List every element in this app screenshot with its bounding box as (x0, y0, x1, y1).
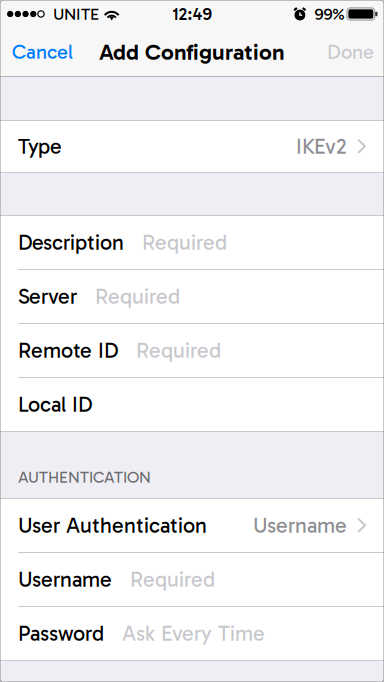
button[interactable]: Done (317, 28, 384, 76)
staticText: Password (18, 621, 104, 646)
staticText: Local ID (18, 392, 92, 417)
button[interactable]: Cancel (0, 28, 83, 76)
staticText: 12:49 (172, 4, 211, 24)
button[interactable]: Local ID (0, 378, 384, 431)
staticText: Required (142, 230, 227, 255)
button[interactable]: Password (0, 607, 384, 660)
staticText: Server (18, 284, 77, 309)
staticText: Username (253, 513, 347, 538)
staticText: Done (327, 40, 374, 64)
staticText: Ask Every Time (122, 621, 265, 646)
button[interactable]: Username (0, 553, 384, 606)
staticText: Add Configuration (99, 38, 285, 66)
staticText: Required (95, 284, 180, 309)
button[interactable]: Server (0, 270, 384, 323)
staticText: Remote ID (18, 338, 118, 363)
staticText: Description (18, 230, 124, 255)
staticText: 99% (314, 4, 344, 24)
staticText: Required (130, 567, 215, 592)
staticText: Type (18, 134, 62, 159)
staticText: Cancel (12, 40, 73, 64)
button[interactable]: Description (0, 216, 384, 269)
staticText: User Authentication (18, 513, 207, 538)
button[interactable]: Type (0, 121, 384, 172)
button[interactable]: User Authentication (0, 499, 384, 552)
staticText: Username (18, 567, 112, 592)
button[interactable]: Remote ID (0, 324, 384, 377)
staticText: Required (136, 338, 221, 363)
staticText: AUTHENTICATION (18, 468, 151, 487)
staticText: UNITE (53, 4, 99, 24)
staticText: IKEv2 (296, 134, 347, 159)
